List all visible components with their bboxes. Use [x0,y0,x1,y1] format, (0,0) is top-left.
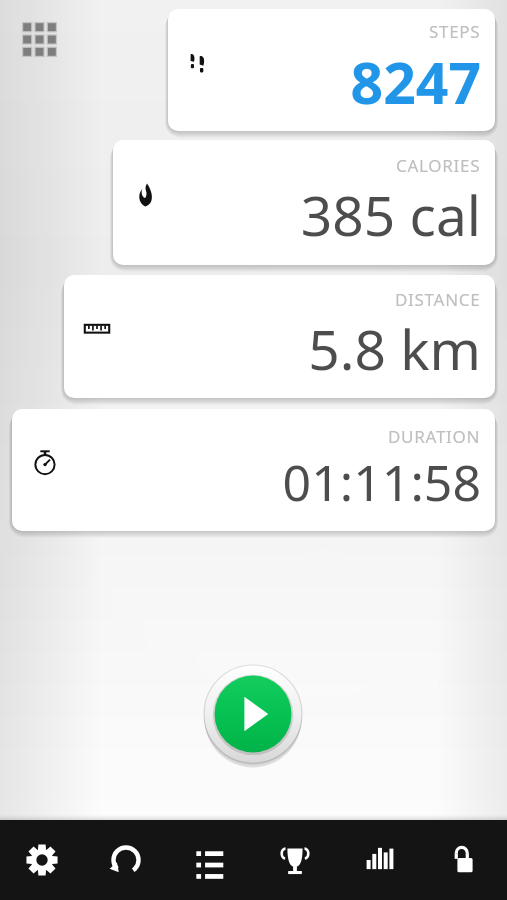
staticText: 5.8 km [308,311,481,386]
other: Distance [84,316,110,342]
button[interactable]: Distance [64,275,495,398]
staticText: 385 cal [300,177,481,252]
other: Duration [32,449,58,475]
button[interactable]: Apps grid [14,14,64,64]
button[interactable]: Achievements [252,820,337,900]
staticText: STEPS [429,20,481,43]
button[interactable]: Settings [0,820,84,900]
button[interactable]: Duration [12,409,495,531]
staticText: CALORIES [396,154,481,177]
button[interactable]: Activity list [168,820,252,900]
staticText: DURATION [388,425,481,448]
staticText: DISTANCE [395,288,481,311]
other: Calories [133,182,159,208]
button[interactable]: Start workout [202,663,304,765]
button[interactable]: Calories [113,140,495,265]
other: Steps [188,49,214,75]
button[interactable]: History [84,820,168,900]
button[interactable]: Steps [168,9,495,131]
staticText: 01:11:58 [282,448,481,516]
button[interactable]: Statistics [337,820,422,900]
button[interactable]: Lock screen [422,820,507,900]
staticText: 8247 [350,43,481,121]
